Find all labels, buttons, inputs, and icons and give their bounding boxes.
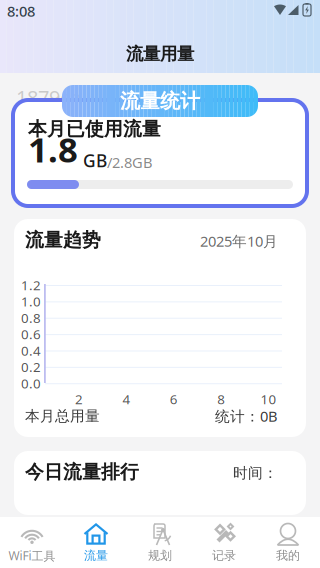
staticText: GB xyxy=(78,149,107,172)
button[interactable]: WiFi工具 xyxy=(0,517,64,568)
staticText: 10 xyxy=(261,390,277,408)
staticText: 0.6 xyxy=(21,325,41,343)
staticText: 2 xyxy=(75,390,83,408)
staticText: 1.2 xyxy=(21,276,41,294)
staticText: 2025年10月 xyxy=(200,231,278,251)
staticText: 8 xyxy=(217,390,225,408)
staticText: WiFi工具 xyxy=(8,547,55,563)
staticText: 0.0 xyxy=(21,374,41,392)
staticText: 流量趋势 xyxy=(25,228,101,251)
staticText: 我的 xyxy=(276,548,300,563)
staticText: 1.8 xyxy=(28,126,78,172)
staticText: 流量用量 xyxy=(126,43,194,65)
staticText: 时间： xyxy=(233,464,278,482)
button[interactable]: 规划 xyxy=(128,517,192,568)
staticText: 4 xyxy=(122,390,130,408)
staticText: 统计：0B xyxy=(215,406,278,426)
staticText: 1.0 xyxy=(21,292,41,310)
staticText: 今日流量排行 xyxy=(25,460,139,483)
button[interactable]: 流量 xyxy=(64,517,128,568)
staticText: 6 xyxy=(170,390,178,408)
staticText: 本月已使用流量 xyxy=(28,117,161,140)
staticText: 本月总用量 xyxy=(25,407,100,425)
staticText: 1879ce… xyxy=(16,84,97,111)
staticText: 0.2 xyxy=(21,358,41,376)
button[interactable]: 记录 xyxy=(192,517,256,568)
staticText: /2.8GB xyxy=(107,152,153,172)
staticText: 记录 xyxy=(212,548,236,563)
staticText: 0.8 xyxy=(21,309,41,327)
staticText: 规划 xyxy=(148,548,172,563)
staticText: 流量 xyxy=(84,548,108,563)
staticText: 8:08 xyxy=(7,1,35,21)
staticText: 0.4 xyxy=(21,342,41,359)
staticText: 流量统计 xyxy=(120,89,200,113)
button[interactable]: 我的 xyxy=(256,517,320,568)
